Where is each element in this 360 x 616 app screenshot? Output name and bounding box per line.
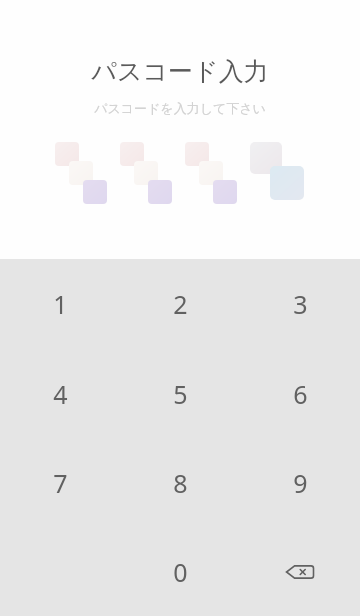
staticText: 0	[173, 555, 188, 589]
staticText: 1	[53, 287, 68, 321]
button[interactable]: Backspace	[240, 527, 360, 616]
button[interactable]: 3	[240, 259, 360, 349]
staticText: 4	[53, 377, 68, 411]
button[interactable]: 2	[120, 259, 240, 349]
button[interactable]: 9	[240, 438, 360, 527]
staticText: パスコードを入力して下さい	[94, 100, 266, 116]
button[interactable]: 6	[240, 349, 360, 438]
button[interactable]: 8	[120, 438, 240, 527]
button[interactable]: 5	[120, 349, 240, 438]
button[interactable]: 1	[0, 259, 120, 349]
button[interactable]: 0	[120, 527, 240, 616]
staticText: パスコード入力	[91, 56, 269, 87]
staticText: 9	[293, 466, 308, 500]
staticText: 2	[173, 287, 188, 321]
button[interactable]: 7	[0, 438, 120, 527]
button[interactable]: 4	[0, 349, 120, 438]
staticText: 7	[53, 466, 68, 500]
staticText: 8	[173, 466, 188, 500]
staticText: 3	[293, 287, 308, 321]
staticText: 6	[293, 377, 308, 411]
staticText: 5	[173, 377, 188, 411]
